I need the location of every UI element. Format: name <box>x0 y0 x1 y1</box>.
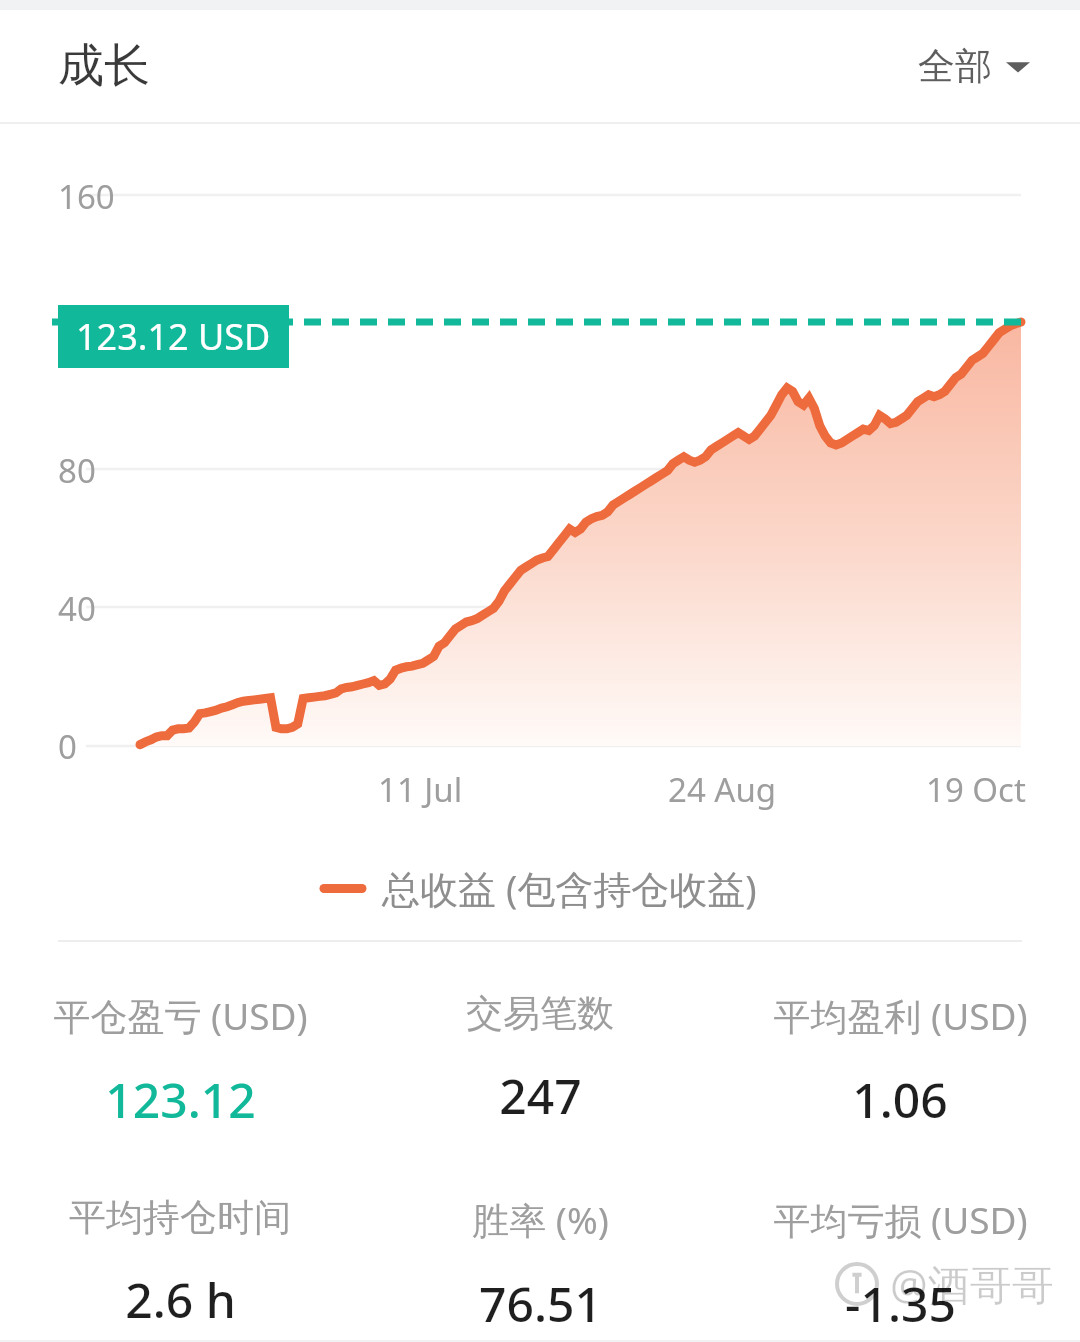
staticText: 2.6 h <box>125 1267 236 1332</box>
button[interactable]: 总收益 (包含持仓收益) <box>324 862 757 914</box>
staticText: 40 <box>58 586 96 631</box>
button[interactable]: 平均亏损 (USD) <box>720 1190 1080 1340</box>
staticText: 19 Oct <box>926 767 1026 812</box>
staticText: 24 Aug <box>668 767 777 812</box>
button[interactable]: 全部 <box>906 31 1042 102</box>
other: Filter range <box>1006 59 1030 75</box>
staticText: 平仓盈亏 (USD) <box>53 990 308 1041</box>
staticText: 平均亏损 (USD) <box>773 1194 1028 1245</box>
staticText: 全部 <box>918 43 992 90</box>
staticText: 76.51 <box>479 1271 602 1336</box>
button[interactable]: 平仓盈亏 (USD) <box>0 986 360 1136</box>
staticText: -1.35 <box>845 1271 956 1336</box>
button[interactable]: 胜率 (%) <box>360 1190 720 1340</box>
button[interactable]: 交易笔数 <box>360 986 720 1132</box>
staticText: 0 <box>58 724 77 769</box>
staticText: 总收益 (包含持仓收益) <box>382 862 757 914</box>
staticText: 123.12 USD <box>76 312 271 361</box>
staticText: @酒哥哥 <box>890 1255 1054 1312</box>
staticText: 160 <box>58 174 115 219</box>
staticText: 11 Jul <box>378 767 463 812</box>
staticText: 80 <box>58 448 96 493</box>
staticText: 247 <box>499 1063 582 1128</box>
staticText: 平均持仓时间 <box>69 1194 291 1241</box>
button[interactable]: 123.12 USD <box>58 305 289 368</box>
staticText: 成长 <box>58 37 150 95</box>
button[interactable]: 平均盈利 (USD) <box>720 986 1080 1136</box>
staticText: 平均盈利 (USD) <box>773 990 1028 1041</box>
staticText: 1.06 <box>852 1067 948 1132</box>
staticText: 交易笔数 <box>466 990 614 1037</box>
staticText: 胜率 (%) <box>472 1194 609 1245</box>
button[interactable]: 平均持仓时间 <box>0 1190 360 1336</box>
staticText: 123.12 <box>105 1067 256 1132</box>
